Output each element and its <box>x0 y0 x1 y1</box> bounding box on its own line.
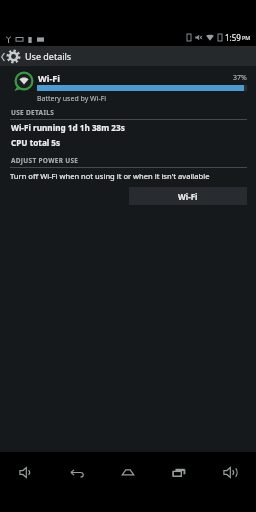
button[interactable]: Back <box>57 460 97 484</box>
staticText: USE DETAILS <box>11 108 55 117</box>
staticText: Wi-Fi running 1d 1h 38m 23s <box>11 122 125 133</box>
button[interactable]: Home <box>108 460 148 484</box>
staticText: Use details <box>25 50 72 62</box>
button[interactable]: Recent apps <box>159 460 199 484</box>
button[interactable]: Volume down <box>6 460 46 484</box>
button[interactable]: Wi-Fi <box>129 187 247 205</box>
staticText: PM <box>242 34 251 41</box>
staticText: CPU total 5s <box>11 137 61 148</box>
staticText: 1:59 <box>225 32 241 43</box>
staticText: 37% <box>233 73 247 83</box>
staticText: Wi-Fi <box>178 191 198 202</box>
staticText: Wi-Fi <box>38 72 60 84</box>
staticText: Turn off Wi-Fi when not using it or when… <box>10 171 210 181</box>
staticText: Battery used by Wi-Fi <box>37 94 107 104</box>
staticText: ADJUST POWER USE <box>11 156 79 165</box>
button[interactable]: Volume up <box>210 460 250 484</box>
button[interactable]: Navigate up <box>0 46 22 66</box>
